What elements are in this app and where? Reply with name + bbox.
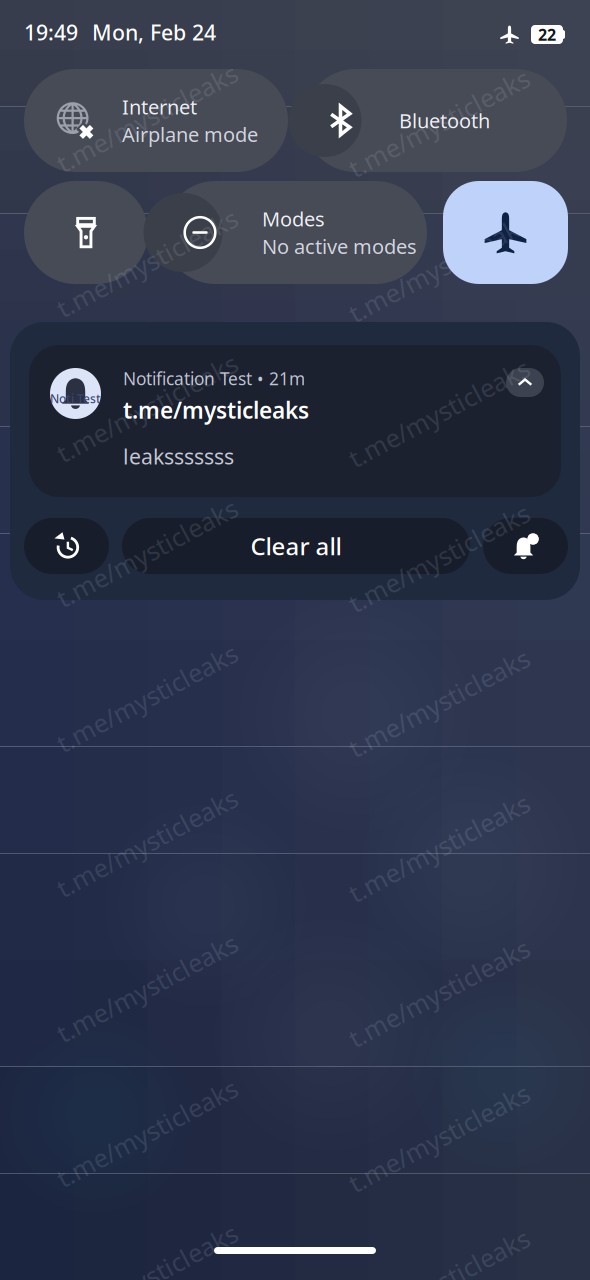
staticText: t.me/mysticleaks	[338, 976, 539, 1010]
button[interactable]: Expand notification	[506, 368, 544, 397]
staticText: t.me/mysticleaks	[46, 681, 247, 715]
staticText: t.me/mysticleaks	[338, 686, 539, 720]
button[interactable]: Notification history	[24, 518, 109, 574]
staticText: t.me/mysticleaks	[46, 826, 247, 860]
staticText: t.me/mysticleaks	[46, 1116, 247, 1150]
staticText: t.me/mysticleaks	[46, 246, 247, 280]
staticText: No active modes	[262, 233, 417, 260]
staticText: Bluetooth	[399, 107, 490, 134]
staticText: Notification Test • 21m	[123, 367, 305, 390]
staticText: Clear all	[250, 530, 341, 562]
button[interactable]: Clear all	[122, 518, 470, 574]
staticText: Mon, Feb 24	[92, 18, 216, 46]
staticText: Modes	[262, 205, 325, 232]
button[interactable]: Flashlight	[24, 181, 148, 284]
button[interactable]: Noti Test	[29, 345, 561, 497]
staticText: t.me/mysticleaks	[338, 396, 539, 430]
staticText: t.me/mysticleaks	[123, 395, 309, 425]
staticText: t.me/mysticleaks	[46, 971, 247, 1005]
staticText: Internet	[122, 93, 197, 120]
button[interactable]: Airplane mode	[443, 181, 568, 284]
staticText: t.me/mysticleaks	[338, 541, 539, 575]
staticText: leaksssssss	[123, 442, 234, 470]
button[interactable]: Modes	[164, 181, 427, 284]
staticText: Airplane mode	[122, 121, 258, 148]
staticText: t.me/mysticleaks	[338, 831, 539, 865]
staticText: 22	[538, 24, 556, 45]
staticText: t.me/mysticleaks	[46, 1261, 247, 1280]
button[interactable]: Bluetooth	[304, 69, 567, 172]
staticText: 19:49	[24, 18, 78, 46]
staticText: t.me/mysticleaks	[338, 106, 539, 140]
staticText: t.me/mysticleaks	[338, 1121, 539, 1155]
staticText: Noti Test	[50, 390, 101, 406]
staticText: t.me/mysticleaks	[46, 101, 247, 135]
staticText: t.me/mysticleaks	[46, 391, 247, 425]
staticText: t.me/mysticleaks	[338, 251, 539, 285]
button[interactable]: Notification settings	[483, 518, 568, 574]
staticText: t.me/mysticleaks	[46, 536, 247, 570]
staticText: t.me/mysticleaks	[338, 1266, 539, 1280]
button[interactable]: Internet	[24, 69, 288, 172]
